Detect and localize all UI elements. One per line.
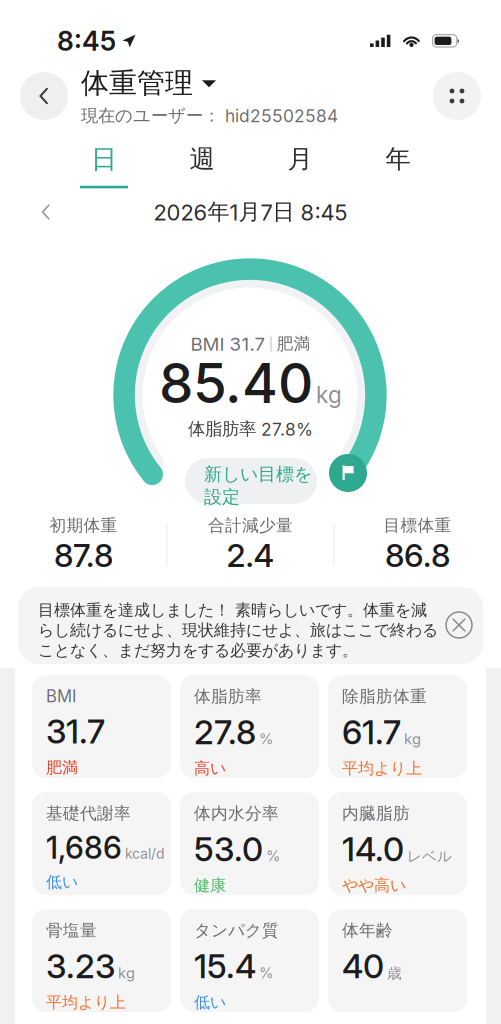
staticText: 低い (194, 992, 226, 1012)
staticText: 86.8 (385, 536, 450, 575)
button[interactable]: 内臓脂肪 (328, 792, 467, 895)
button[interactable]: 新しい目標を設定 (185, 458, 317, 504)
staticText: 健康 (194, 875, 226, 895)
button[interactable]: 骨塩量 (32, 909, 171, 1012)
staticText: 87.8 (54, 536, 113, 575)
button[interactable]: Back (20, 72, 68, 120)
staticText: 日 (91, 143, 117, 176)
staticText: 基礎代謝率 (46, 803, 131, 824)
staticText: 体年齢 (342, 920, 393, 941)
staticText: kcal/d (125, 845, 165, 862)
staticText: 31.7 (46, 711, 105, 751)
staticText: 体脂肪率 (194, 686, 262, 707)
button[interactable]: 除脂肪体重 (328, 675, 467, 778)
staticText: 肥満 (46, 757, 78, 778)
staticText: 27.8 (194, 712, 256, 752)
button[interactable]: Dismiss (445, 611, 473, 639)
staticText: 40 (342, 946, 384, 986)
staticText: 歳 (387, 964, 402, 983)
staticText: % (259, 730, 273, 748)
button[interactable]: More options (433, 72, 481, 120)
button[interactable]: 基礎代謝率 (32, 792, 171, 895)
button[interactable]: タンパク質 (180, 909, 319, 1012)
staticText: 3.23 (46, 946, 115, 986)
staticText: 14.0 (342, 829, 404, 869)
staticText: kg (404, 730, 421, 748)
staticText: 初期体重 (49, 515, 117, 536)
staticText: 15.4 (194, 946, 256, 986)
staticText: 低い (46, 872, 78, 892)
staticText: 2.4 (226, 536, 274, 575)
staticText: 平均より上 (342, 758, 422, 778)
staticText: 2026年1月7日 8:45 (153, 198, 347, 226)
button[interactable]: Previous day (29, 195, 63, 229)
staticText: 週 (189, 143, 214, 175)
staticText: 骨塩量 (46, 920, 97, 941)
staticText: 体重管理 (81, 65, 193, 101)
staticText: 1,686 (46, 829, 122, 866)
staticText: kg (316, 381, 342, 408)
staticText: 53.0 (194, 829, 263, 869)
staticText: % (266, 847, 280, 865)
staticText: 肥満 (277, 333, 311, 354)
staticText: やや高い (342, 875, 406, 895)
button[interactable]: 体内水分率 (180, 792, 319, 895)
staticText: 体内水分率 (194, 803, 279, 824)
button[interactable]: 日 (55, 143, 153, 183)
staticText: kg (118, 964, 135, 982)
staticText: 合計減少量 (208, 515, 293, 536)
button[interactable]: 年 (349, 143, 447, 183)
staticText: 体脂肪率 27.8% (188, 418, 313, 440)
staticText: 目標体重を達成しました！ 素晴らしいです。体重を減らし続けるにせよ、現状維持にせ… (38, 600, 438, 660)
staticText: % (259, 964, 273, 982)
staticText: 61.7 (342, 712, 401, 752)
staticText: レベル (407, 847, 452, 866)
staticText: 目標体重 (383, 515, 451, 536)
staticText: 平均より上 (46, 992, 126, 1012)
button[interactable]: 体脂肪率 (180, 675, 319, 778)
staticText: 除脂肪体重 (342, 686, 427, 707)
staticText: 年 (385, 143, 410, 175)
staticText: 月 (287, 143, 312, 175)
staticText: 高い (194, 758, 226, 778)
staticText: タンパク質 (194, 920, 279, 941)
staticText: 新しい目標を設定 (204, 463, 312, 508)
button[interactable]: 週 (153, 143, 251, 183)
staticText: 8:45 (57, 25, 116, 57)
staticText: BMI (46, 686, 76, 706)
staticText: 85.40 (159, 350, 313, 416)
staticText: 現在のユーザー： hid25502584 (81, 105, 338, 126)
button[interactable]: 月 (251, 143, 349, 183)
button[interactable]: 体年齢 (328, 909, 467, 1012)
staticText: BMI 31.7 (190, 333, 265, 355)
staticText: 内臓脂肪 (342, 803, 410, 824)
button[interactable]: BMI (32, 675, 171, 778)
